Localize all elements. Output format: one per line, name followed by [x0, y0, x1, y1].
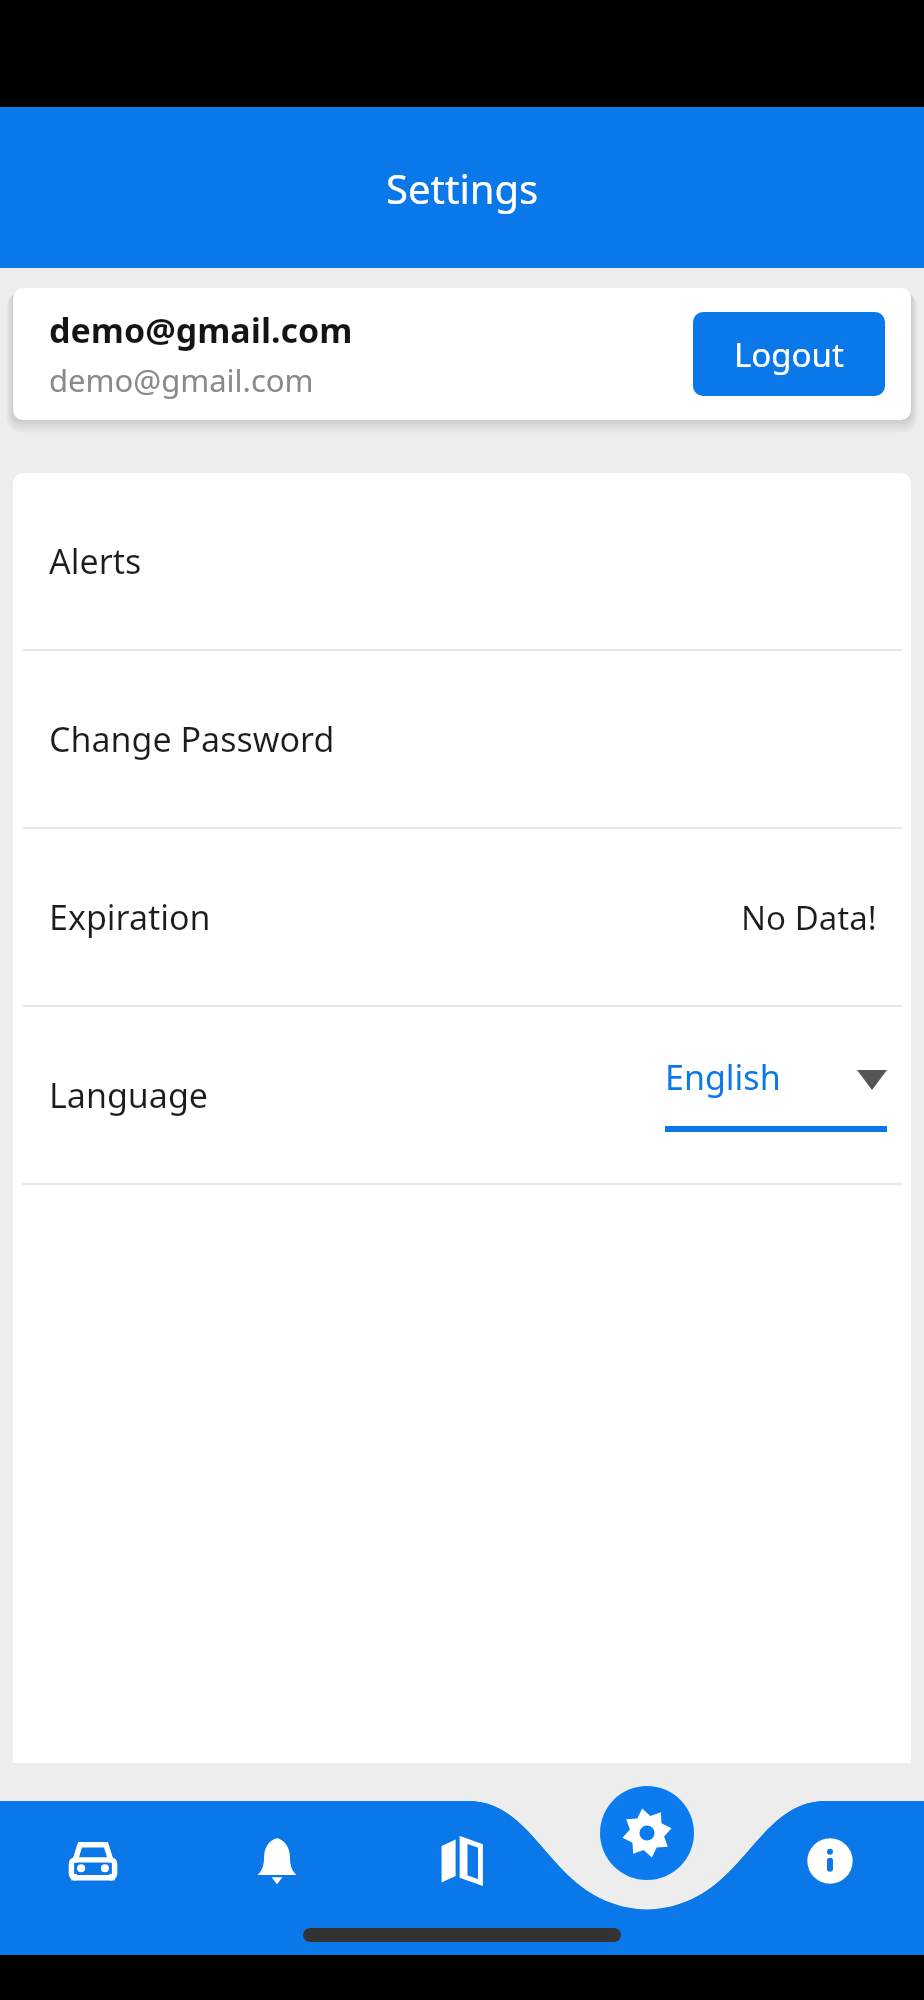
button[interactable]: Alerts — [231, 1815, 323, 1907]
button[interactable]: Logout — [693, 312, 885, 396]
staticText: Logout — [734, 332, 844, 377]
button[interactable]: Settings — [600, 1786, 694, 1880]
button[interactable]: Vehicles — [47, 1815, 139, 1907]
button[interactable]: Map — [415, 1815, 507, 1907]
staticText: Expiration — [49, 894, 211, 940]
staticText: demo@gmail.com — [49, 307, 353, 353]
button[interactable]: English — [665, 1040, 887, 1150]
staticText: Language — [49, 1072, 208, 1118]
button[interactable]: Info — [784, 1815, 876, 1907]
button[interactable]: Alerts — [13, 473, 911, 649]
staticText: Change Password — [49, 716, 335, 762]
staticText: Settings — [386, 161, 539, 215]
button[interactable]: Language — [13, 1007, 911, 1183]
staticText: Alerts — [49, 538, 142, 584]
button[interactable]: Expiration — [13, 829, 911, 1005]
staticText: English — [665, 1054, 781, 1100]
button[interactable]: Change Password — [13, 651, 911, 827]
staticText: No Data! — [741, 895, 877, 940]
staticText: demo@gmail.com — [49, 359, 314, 401]
